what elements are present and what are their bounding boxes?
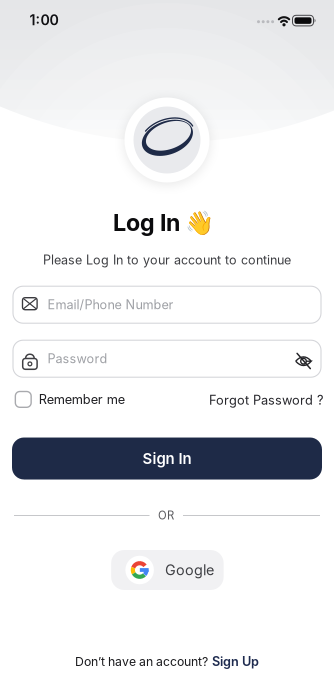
staticText: Google: [165, 561, 214, 579]
staticText: Sign Up: [212, 654, 259, 669]
button[interactable]: Remember me: [15, 391, 125, 407]
staticText: Please Log In to your account to continu…: [43, 252, 291, 268]
staticText: Email/Phone Number: [47, 297, 173, 312]
staticText: Password: [47, 351, 107, 366]
button[interactable]: Sign Up: [212, 654, 259, 669]
button[interactable]: Sign in with Google: [111, 550, 224, 590]
button[interactable]: Show password: [290, 348, 316, 374]
staticText: 1:00: [29, 11, 58, 28]
button[interactable]: Sign In: [12, 437, 322, 479]
button[interactable]: Forgot Password ?: [209, 392, 324, 408]
staticText: Sign In: [142, 449, 191, 468]
staticText: Don’t have an account?: [75, 654, 208, 669]
staticText: Remember me: [39, 392, 125, 407]
staticText: Log In 👋: [113, 208, 214, 237]
staticText: OR: [158, 509, 174, 522]
staticText: Forgot Password ?: [209, 392, 324, 408]
